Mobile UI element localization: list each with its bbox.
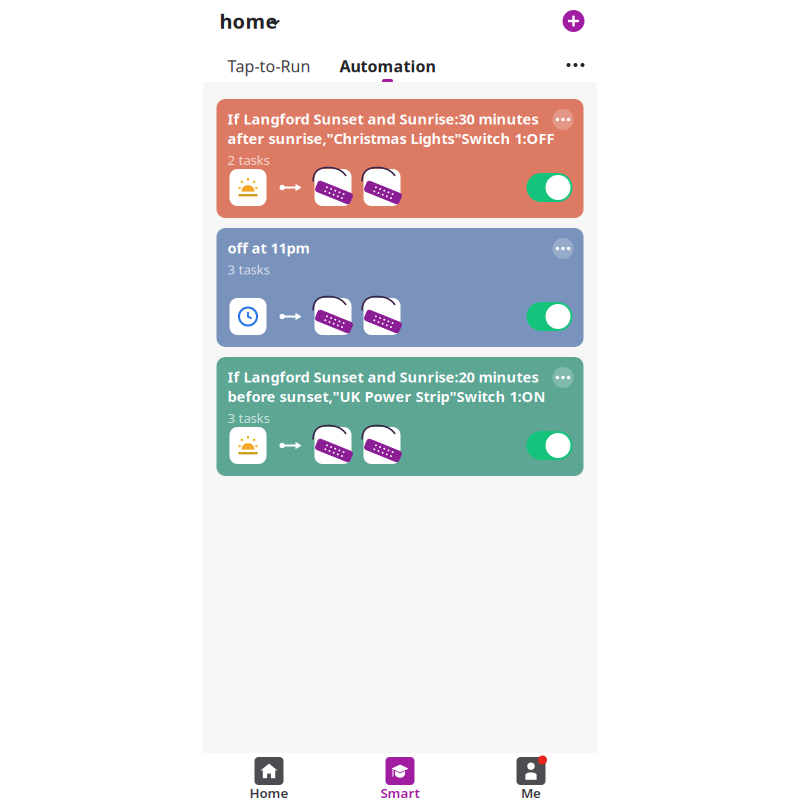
staticText: Smart bbox=[380, 784, 419, 800]
staticText: Me bbox=[521, 784, 541, 800]
staticText: 2 tasks bbox=[227, 151, 269, 169]
staticText: 3 tasks bbox=[227, 260, 269, 278]
button[interactable]: Home bbox=[203, 753, 334, 800]
button[interactable]: More options bbox=[552, 238, 573, 259]
staticText: home bbox=[219, 8, 277, 34]
staticText: Tap-to-Run bbox=[227, 55, 310, 77]
staticText: If Langford Sunset and Sunrise:20 minute… bbox=[227, 367, 545, 406]
button[interactable]: More options bbox=[552, 367, 573, 388]
button[interactable]: home bbox=[219, 10, 285, 32]
button[interactable]: Me bbox=[465, 753, 596, 800]
staticText: off at 11pm bbox=[227, 238, 309, 257]
staticText: If Langford Sunset and Sunrise:30 minute… bbox=[227, 109, 554, 148]
staticText: 3 tasks bbox=[227, 409, 269, 427]
button[interactable]: More options bbox=[552, 109, 573, 130]
staticText: Automation bbox=[339, 55, 435, 77]
staticText: Home bbox=[249, 784, 288, 800]
button[interactable]: Add bbox=[562, 10, 584, 32]
button[interactable]: Automation bbox=[339, 57, 435, 83]
button[interactable]: More bbox=[561, 54, 589, 76]
button[interactable]: Tap-to-Run bbox=[227, 57, 310, 75]
button[interactable]: Smart bbox=[334, 753, 465, 800]
